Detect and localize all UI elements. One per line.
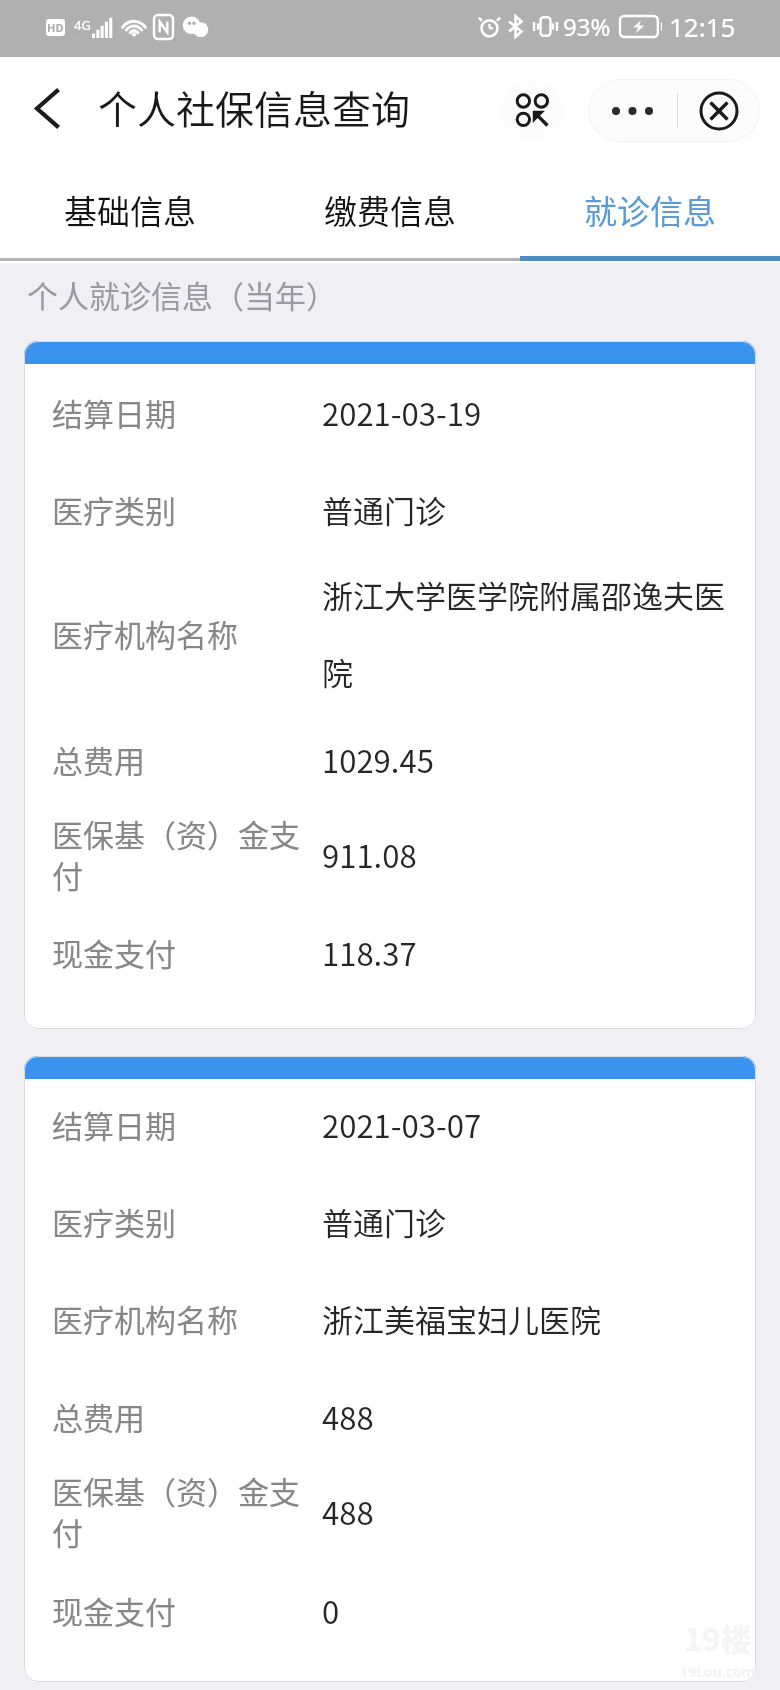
staticText: 医疗类别 xyxy=(52,1199,304,1244)
button[interactable]: 就诊信息 xyxy=(520,163,780,263)
staticText: 医疗机构名称 xyxy=(52,611,304,656)
button[interactable]: 结算日期 xyxy=(24,1056,756,1682)
button[interactable]: Close xyxy=(678,79,760,142)
staticText: 浙江大学医学院附属邵逸夫医院 xyxy=(322,572,739,694)
staticText: 结算日期 xyxy=(52,390,304,435)
staticText: 缴费信息 xyxy=(324,186,456,234)
staticText: 现金支付 xyxy=(52,930,304,975)
staticText: 医保基（资）金支付 xyxy=(52,811,304,897)
staticText: 488 xyxy=(322,1394,374,1439)
staticText: 医疗类别 xyxy=(52,487,304,532)
button[interactable]: 结算日期 xyxy=(24,341,756,1029)
staticText: 现金支付 xyxy=(52,1588,304,1633)
staticText: 911.08 xyxy=(322,832,417,877)
staticText: HD xyxy=(47,20,64,35)
staticText: 19楼 xyxy=(684,1615,752,1660)
staticText: 2021-03-19 xyxy=(322,390,482,435)
staticText: 0 xyxy=(322,1588,340,1633)
staticText: 2021-03-07 xyxy=(322,1102,482,1147)
staticText: 基础信息 xyxy=(64,186,196,234)
staticText: 个人就诊信息（当年） xyxy=(27,272,337,317)
staticText: 19Lou.com xyxy=(680,1662,756,1681)
button[interactable]: Back xyxy=(13,76,81,144)
staticText: 93% xyxy=(563,10,611,43)
staticText: 12:15 xyxy=(669,9,736,44)
staticText: 总费用 xyxy=(52,1394,304,1439)
staticText: 118.37 xyxy=(322,930,417,975)
staticText: 普通门诊 xyxy=(322,487,446,532)
button[interactable]: 缴费信息 xyxy=(260,163,520,263)
button[interactable]: More xyxy=(588,79,677,142)
staticText: 医保基（资）金支付 xyxy=(52,1468,304,1554)
staticText: 总费用 xyxy=(52,737,304,782)
staticText: 医疗机构名称 xyxy=(52,1296,304,1341)
staticText: 488 xyxy=(322,1489,374,1534)
staticText: 4G xyxy=(74,16,91,34)
staticText: 浙江美福宝妇儿医院 xyxy=(322,1296,601,1341)
staticText: 1029.45 xyxy=(322,737,434,782)
staticText: 个人社保信息查询 xyxy=(98,79,411,135)
staticText: lk xyxy=(74,34,82,38)
button[interactable]: Mini program xyxy=(501,79,563,141)
staticText: 普通门诊 xyxy=(322,1199,446,1244)
staticText: 就诊信息 xyxy=(584,186,716,234)
staticText: 结算日期 xyxy=(52,1102,304,1147)
button[interactable]: 基础信息 xyxy=(0,163,260,263)
